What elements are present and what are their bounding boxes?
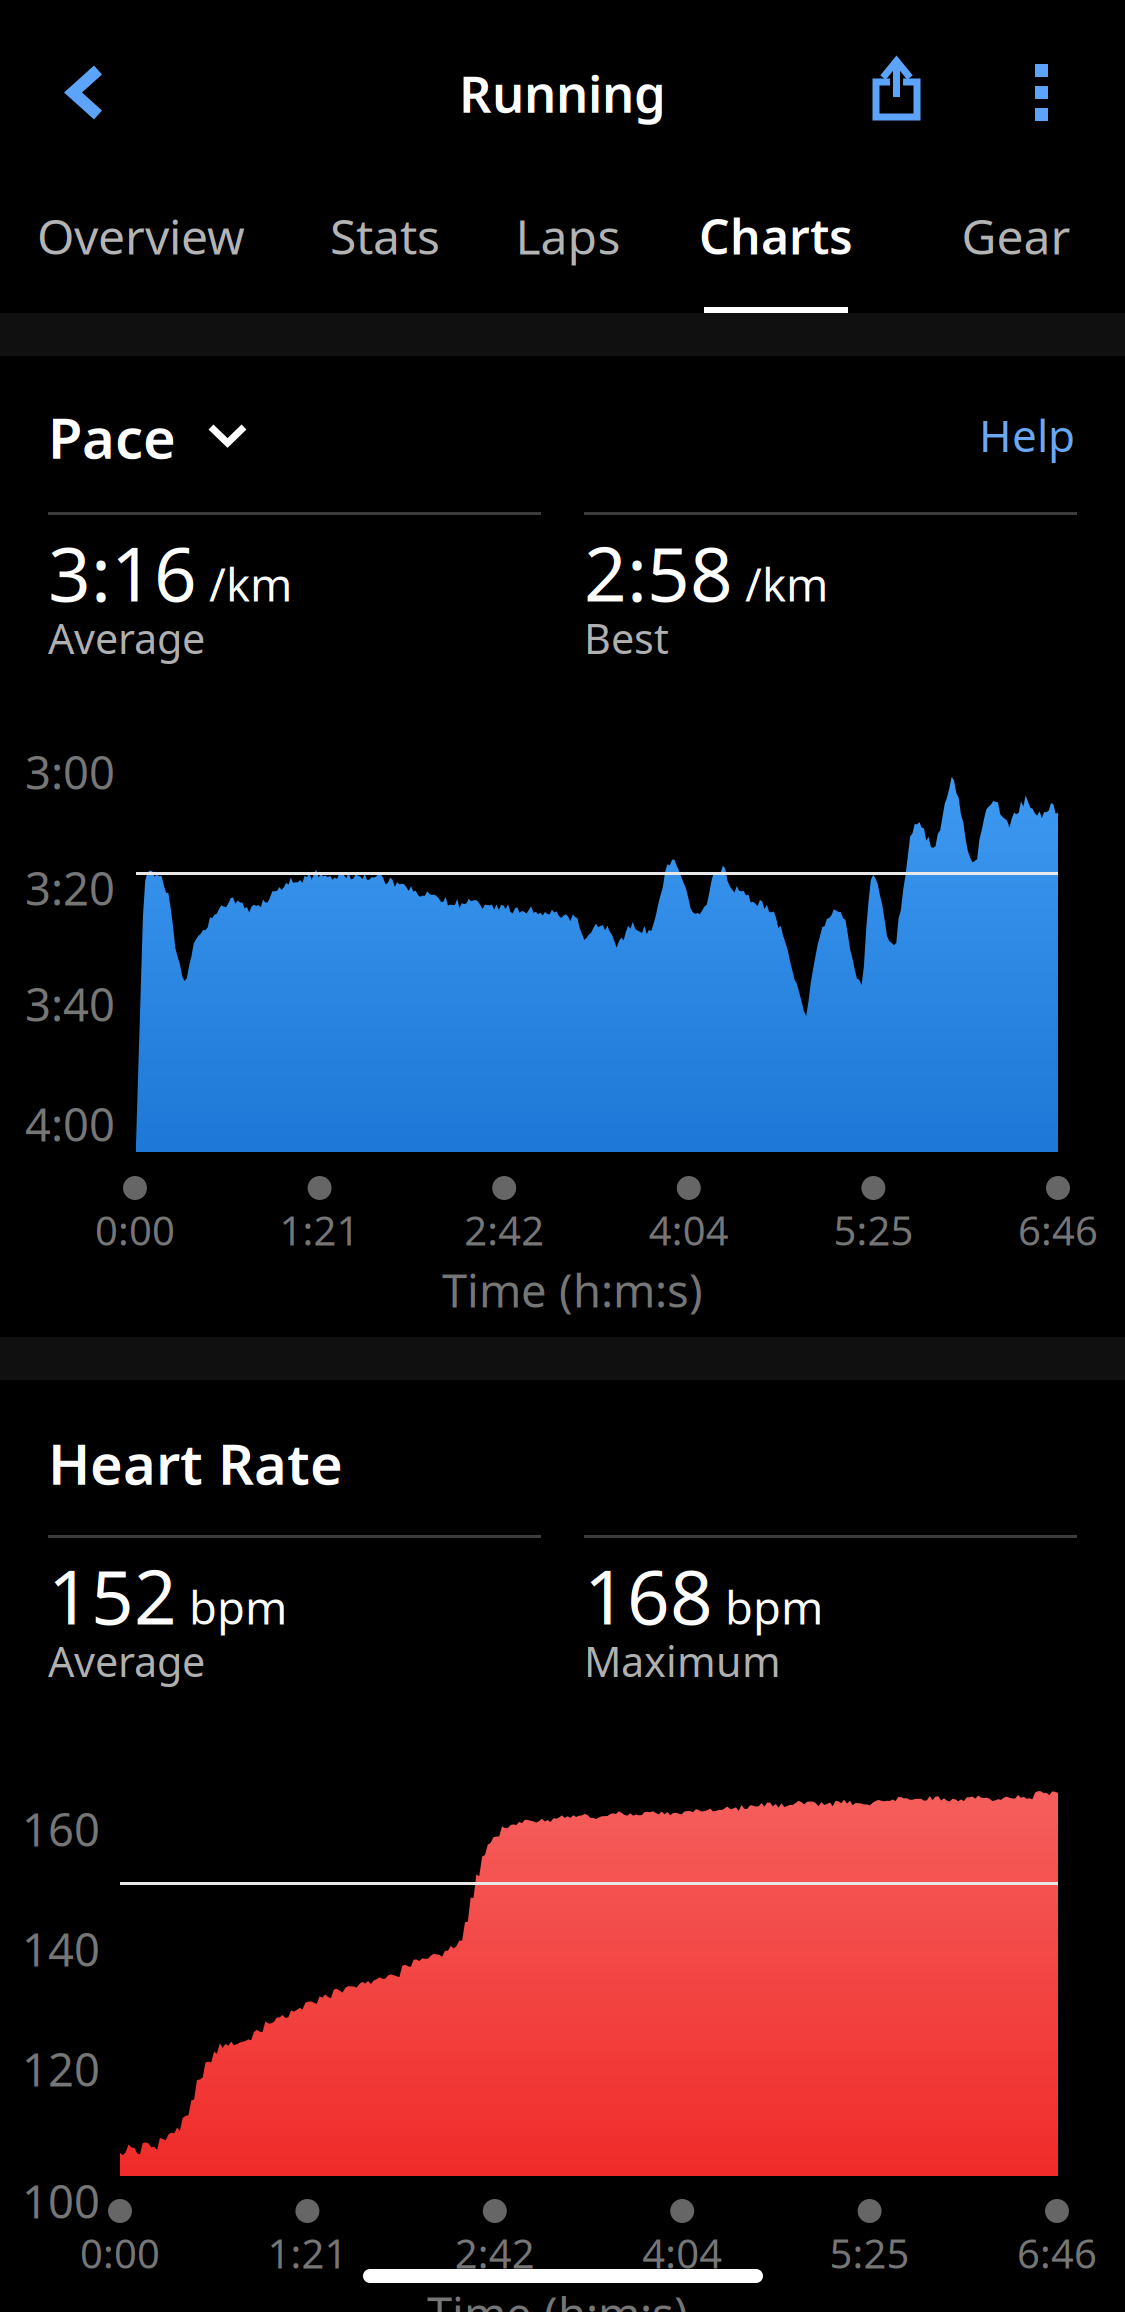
staticText: Pace [48, 400, 176, 474]
staticText: 2:42 [455, 2226, 535, 2279]
staticText: 6:46 [1017, 2226, 1097, 2279]
staticText: 3:16 [48, 523, 197, 622]
staticText: Gear [961, 204, 1070, 268]
staticText: bpm [725, 1577, 823, 1637]
staticText: 2:58 [584, 523, 733, 622]
staticText: bpm [189, 1577, 287, 1637]
staticText: Average [48, 611, 205, 665]
staticText: 152 [48, 1546, 177, 1645]
staticText: Time (h:m:s) [427, 2283, 688, 2312]
staticText: Stats [330, 204, 440, 268]
staticText: 168 [584, 1546, 713, 1645]
staticText: 3:20 [25, 858, 115, 918]
staticText: Laps [515, 204, 620, 268]
staticText: /km [209, 554, 292, 614]
staticText: 4:00 [25, 1094, 115, 1154]
staticText: 5:25 [830, 2226, 910, 2279]
staticText: Overview [37, 204, 245, 268]
staticText: 3:00 [25, 742, 115, 802]
staticText: 4:04 [649, 1203, 729, 1256]
staticText: 140 [22, 1919, 100, 1979]
staticText: Best [584, 611, 669, 665]
staticText: /km [745, 554, 828, 614]
staticText: Average [48, 1634, 205, 1688]
staticText: 0:00 [80, 2226, 160, 2279]
staticText: 5:25 [833, 1203, 913, 1256]
staticText: 2:42 [464, 1203, 544, 1256]
staticText: 100 [22, 2171, 100, 2231]
button[interactable]: Charts [666, 175, 886, 313]
button[interactable]: Stats [295, 175, 475, 313]
button[interactable]: Back [23, 22, 148, 163]
staticText: Heart Rate [48, 1426, 343, 1500]
staticText: 1:21 [267, 2226, 347, 2279]
button[interactable]: More options [985, 18, 1098, 167]
staticText: Charts [699, 204, 853, 268]
staticText: 3:40 [25, 974, 115, 1034]
button[interactable]: Share [827, 13, 967, 164]
button[interactable]: Overview [11, 175, 271, 313]
staticText: Time (h:m:s) [442, 1260, 703, 1320]
staticText: 6:46 [1018, 1203, 1098, 1256]
staticText: 4:04 [642, 2226, 722, 2279]
button[interactable]: Gear [926, 175, 1106, 313]
staticText: Help [979, 406, 1075, 464]
staticText: Running [459, 59, 666, 127]
staticText: 1:21 [280, 1203, 360, 1256]
staticText: Maximum [584, 1634, 781, 1688]
button[interactable]: Laps [483, 175, 653, 313]
staticText: 0:00 [95, 1203, 175, 1256]
button[interactable]: Pace [48, 392, 378, 482]
button[interactable]: Help [895, 390, 1075, 480]
staticText: 160 [22, 1799, 100, 1859]
staticText: 120 [22, 2039, 100, 2099]
